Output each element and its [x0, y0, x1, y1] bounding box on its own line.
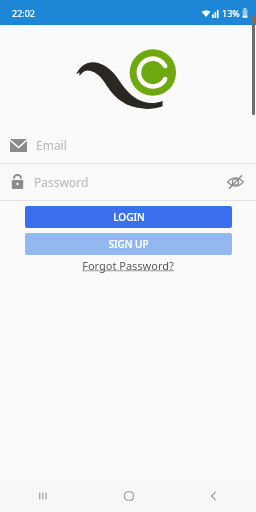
- button[interactable]: Home: [86, 480, 171, 512]
- button[interactable]: Forgot Password?: [0, 258, 256, 273]
- button[interactable]: Recents: [0, 480, 86, 512]
- staticText: LOGIN: [113, 210, 145, 224]
- staticText: Forgot Password?: [82, 258, 174, 273]
- button[interactable]: SIGN UP: [25, 233, 232, 255]
- staticText: 22:02: [12, 7, 36, 19]
- staticText: 13%: [222, 7, 240, 19]
- other: Email: [10, 139, 27, 152]
- staticText: Password: [34, 174, 89, 190]
- button[interactable]: Password: [0, 164, 256, 201]
- button[interactable]: Back: [171, 480, 256, 512]
- button[interactable]: Show password: [224, 171, 246, 193]
- button[interactable]: LOGIN: [25, 206, 232, 228]
- button[interactable]: Email: [0, 127, 256, 164]
- other: Password: [10, 174, 25, 190]
- staticText: Email: [36, 137, 67, 153]
- staticText: SIGN UP: [108, 237, 149, 251]
